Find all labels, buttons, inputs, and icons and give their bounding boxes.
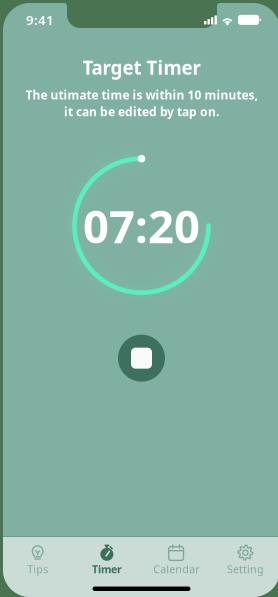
staticText: 9:41 <box>26 11 54 29</box>
button[interactable]: Timer <box>72 537 141 579</box>
staticText: Timer <box>92 562 122 576</box>
button[interactable]: Stop timer <box>118 335 165 382</box>
staticText: Setting <box>227 562 264 576</box>
staticText: Target Timer <box>82 55 200 80</box>
button[interactable]: Tips <box>3 537 72 579</box>
button[interactable]: Setting <box>211 537 278 579</box>
staticText: The utimate time is within 10 minutes, <box>25 87 257 103</box>
staticText: Calendar <box>153 562 199 576</box>
staticText: 07:20 <box>83 196 200 256</box>
staticText: Tips <box>27 562 48 576</box>
button[interactable]: Calendar <box>141 537 211 579</box>
staticText: it can be edited by tap on. <box>64 104 219 120</box>
